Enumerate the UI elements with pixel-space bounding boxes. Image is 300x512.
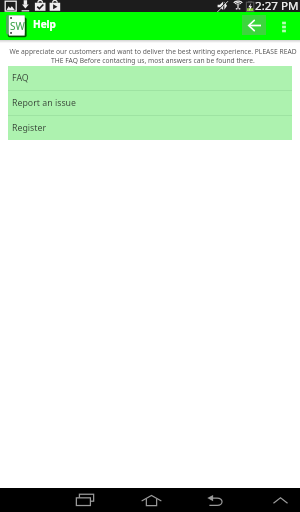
staticText: We appreciate our customers and want to … [7,47,299,65]
staticText: Register [12,122,47,134]
button[interactable]: Recents [69,488,101,512]
button[interactable]: Expand [264,488,296,512]
staticText: SW [10,19,25,33]
staticText: Report an issue [12,97,77,109]
button[interactable]: FAQ [8,66,292,90]
button[interactable]: Back [242,15,266,35]
staticText: 2:27 PM [255,0,299,10]
button[interactable]: More options [277,13,291,39]
staticText: Help [33,17,56,31]
button[interactable]: Register [8,116,292,140]
staticText: FAQ [12,72,29,84]
button[interactable]: Report an issue [8,91,292,115]
button[interactable]: Back [199,488,231,512]
button[interactable]: Home [135,488,167,512]
